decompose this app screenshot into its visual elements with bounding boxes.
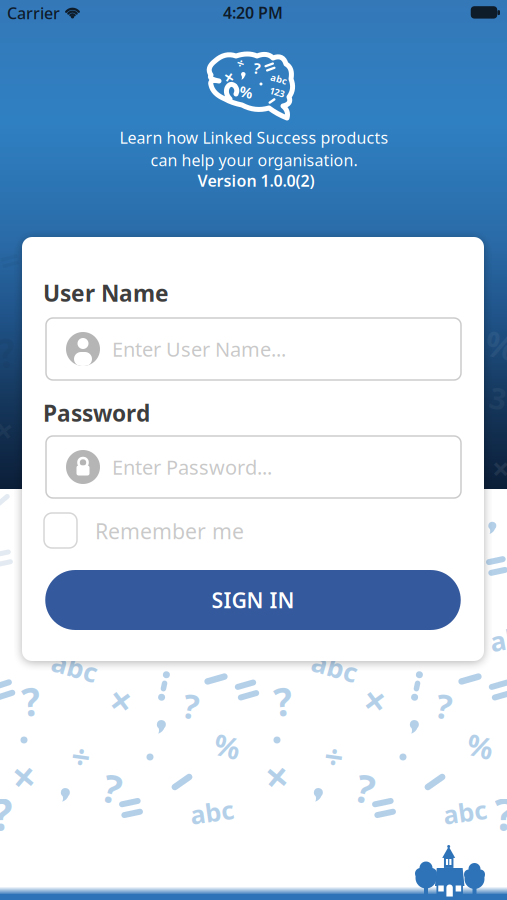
staticText: Password: [43, 398, 150, 428]
staticText: ×: [0, 409, 13, 451]
staticText: Carrier: [7, 2, 60, 24]
staticText: ?: [356, 762, 374, 814]
staticText: 4:20 PM: [223, 2, 283, 23]
staticText: abc: [443, 795, 487, 829]
staticText: ?: [22, 675, 40, 727]
staticText: Enter Password...: [112, 454, 272, 480]
button[interactable]: Remember me: [44, 513, 284, 548]
staticText: Version 1.0.0(2): [197, 170, 314, 191]
staticText: ?: [183, 684, 199, 728]
staticText: %: [214, 726, 240, 765]
staticText: ×: [12, 749, 36, 803]
staticText: %: [467, 726, 493, 765]
staticText: 123: [269, 86, 284, 98]
staticText: ?: [0, 325, 15, 378]
staticText: abc: [51, 649, 98, 685]
button[interactable]: Enter Password...: [46, 436, 461, 498]
staticText: abc: [190, 795, 234, 829]
staticText: abc: [270, 73, 287, 85]
staticText: 3: [489, 378, 506, 417]
staticText: abc: [311, 649, 358, 685]
staticText: User Name: [43, 278, 169, 308]
button[interactable]: Enter User Name...: [46, 318, 461, 380]
staticText: abc: [489, 620, 507, 656]
button[interactable]: SIGN IN: [45, 570, 461, 630]
staticText: ×: [265, 749, 289, 803]
staticText: ?: [274, 675, 292, 727]
staticText: =: [0, 237, 20, 283]
staticText: Remember me: [95, 517, 244, 545]
staticText: ×: [492, 448, 507, 488]
staticText: Enter User Name...: [112, 336, 286, 362]
staticText: %: [239, 82, 252, 102]
staticText: ?: [0, 785, 12, 843]
staticText: ×: [364, 674, 386, 726]
staticText: ?: [494, 785, 507, 843]
staticText: ×: [110, 674, 132, 726]
staticText: ×: [224, 65, 234, 88]
staticText: ÷: [324, 734, 343, 778]
staticText: ?: [436, 684, 452, 728]
staticText: ?: [103, 762, 121, 814]
staticText: Learn how Linked Success products: [119, 127, 388, 148]
staticText: can help your organisation.: [150, 149, 357, 171]
staticText: ?: [253, 58, 260, 78]
staticText: SIGN IN: [211, 586, 294, 614]
staticText: ÷: [237, 54, 245, 72]
staticText: ÷: [71, 734, 90, 778]
staticText: %: [485, 322, 507, 368]
